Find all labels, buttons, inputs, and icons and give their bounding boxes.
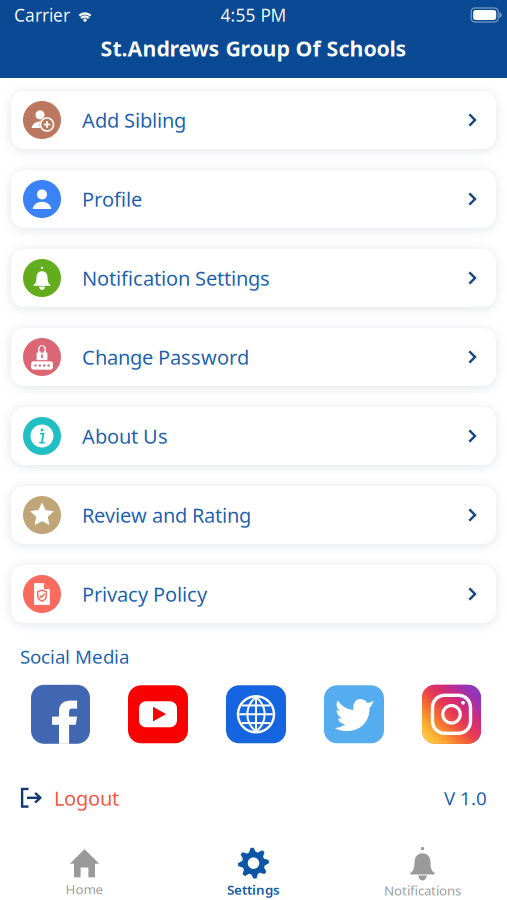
staticText: Settings <box>227 881 280 898</box>
button[interactable]: Home <box>0 846 169 900</box>
staticText: Notification Settings <box>82 265 270 291</box>
staticText: Notifications <box>384 881 461 899</box>
staticText: Carrier <box>14 3 70 26</box>
staticText: Change Password <box>82 344 249 370</box>
button[interactable]: Facebook <box>31 685 90 744</box>
button[interactable]: Privacy Policy <box>11 565 496 623</box>
staticText: Privacy Policy <box>82 581 207 607</box>
staticText: Home <box>65 880 103 898</box>
button[interactable]: Settings <box>169 846 338 900</box>
button[interactable]: Notifications <box>338 846 507 900</box>
button[interactable]: Instagram <box>422 685 481 744</box>
staticText: Review and Rating <box>82 502 251 528</box>
staticText: Profile <box>82 186 142 212</box>
button[interactable]: YouTube <box>128 685 188 743</box>
button[interactable]: Change Password <box>11 328 496 386</box>
staticText: Logout <box>54 785 119 811</box>
staticText: About Us <box>82 423 168 449</box>
staticText: St.Andrews Group Of Schools <box>100 34 406 62</box>
button[interactable]: Logout <box>20 785 119 811</box>
button[interactable]: Notification Settings <box>11 249 496 307</box>
button[interactable]: Website <box>226 685 286 743</box>
staticText: Social Media <box>20 644 129 669</box>
staticText: V 1.0 <box>444 786 487 810</box>
button[interactable]: Review and Rating <box>11 486 496 544</box>
button[interactable]: Add Sibling <box>11 91 496 149</box>
staticText: 4:55 PM <box>220 3 286 26</box>
button[interactable]: About Us <box>11 407 496 465</box>
staticText: Add Sibling <box>82 107 186 133</box>
button[interactable]: Twitter <box>324 685 384 743</box>
button[interactable]: Profile <box>11 170 496 228</box>
